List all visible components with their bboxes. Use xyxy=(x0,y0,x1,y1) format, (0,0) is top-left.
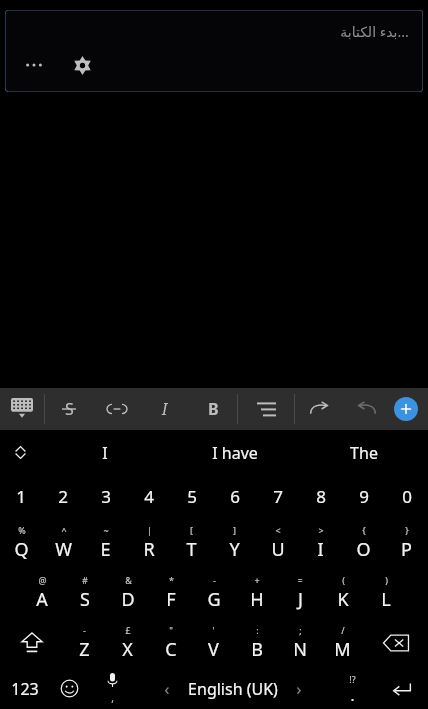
button[interactable]: ( xyxy=(321,568,364,618)
button[interactable]: 9 xyxy=(342,475,385,518)
button[interactable]: Link xyxy=(93,388,141,430)
button[interactable]: @ xyxy=(20,568,63,618)
button[interactable]: 7 xyxy=(256,475,299,518)
staticText: W xyxy=(55,537,72,562)
staticText: I xyxy=(162,398,168,420)
button[interactable]: بدء الكتابة... xyxy=(5,10,423,92)
staticText: English (UK) xyxy=(188,678,278,700)
button[interactable]: More options xyxy=(17,48,51,82)
button[interactable]: > xyxy=(299,518,342,568)
button[interactable]: ‹ xyxy=(135,668,330,709)
button[interactable]: 6 xyxy=(213,475,256,518)
staticText: Z xyxy=(79,637,90,662)
button[interactable]: & xyxy=(106,568,149,618)
button[interactable]: Alignment xyxy=(238,388,294,430)
staticText: I xyxy=(102,442,108,464)
button[interactable]: | xyxy=(127,518,170,568)
staticText: 0 xyxy=(402,485,412,508)
staticText: R xyxy=(143,537,155,562)
button[interactable]: Backspace xyxy=(364,618,428,668)
button[interactable]: 5 xyxy=(170,475,213,518)
button[interactable]: I have xyxy=(170,430,299,475)
staticText: Q xyxy=(14,537,29,562)
staticText: بدء الكتابة... xyxy=(340,22,409,41)
button[interactable]: ) xyxy=(364,568,407,618)
button[interactable]: Keyboard xyxy=(0,388,44,430)
button[interactable]: Add xyxy=(394,397,418,421)
button[interactable]: Bold xyxy=(189,388,237,430)
staticText: " xyxy=(169,624,173,636)
staticText: # xyxy=(82,574,88,586)
staticText: - xyxy=(83,624,86,636)
button[interactable]: Undo xyxy=(343,388,391,430)
button[interactable]: ^ xyxy=(42,518,84,568)
button[interactable]: { xyxy=(342,518,385,568)
button[interactable]: ; xyxy=(278,618,321,668)
button[interactable]: * xyxy=(149,568,192,618)
button[interactable]: 4 xyxy=(127,475,170,518)
button[interactable]: " xyxy=(149,618,192,668)
button[interactable]: Expand suggestions xyxy=(0,430,40,475)
staticText: A xyxy=(36,587,48,612)
staticText: ) xyxy=(385,574,388,586)
button[interactable]: # xyxy=(63,568,106,618)
staticText: ' xyxy=(212,624,215,636)
staticText: % xyxy=(18,524,26,536)
staticText: O xyxy=(356,537,371,562)
button[interactable]: % xyxy=(0,518,42,568)
staticText: 123 xyxy=(11,678,39,700)
button[interactable]: ' xyxy=(192,618,235,668)
staticText: H xyxy=(250,587,264,612)
staticText: | xyxy=(147,524,152,536)
button[interactable]: [ xyxy=(170,518,213,568)
staticText: U xyxy=(271,537,285,562)
staticText: * xyxy=(169,574,174,586)
button[interactable]: Italic xyxy=(141,388,189,430)
button[interactable]: 8 xyxy=(299,475,342,518)
button[interactable]: £ xyxy=(106,618,149,668)
button[interactable]: Enter xyxy=(375,668,428,709)
button[interactable]: 2 xyxy=(42,475,84,518)
staticText: & xyxy=(125,574,132,586)
staticText: C xyxy=(165,637,177,662)
button[interactable]: Voice input xyxy=(90,668,135,709)
button[interactable]: Strikethrough xyxy=(45,388,93,430)
button[interactable]: Shift xyxy=(0,618,63,668)
button[interactable]: 3 xyxy=(84,475,127,518)
button[interactable]: - xyxy=(63,618,106,668)
staticText: ( xyxy=(342,574,345,586)
button[interactable]: : xyxy=(235,618,278,668)
button[interactable]: Settings xyxy=(65,48,99,82)
staticText: - xyxy=(213,574,216,586)
button[interactable]: ] xyxy=(213,518,256,568)
staticText: / xyxy=(341,624,345,636)
staticText: S xyxy=(80,587,90,612)
button[interactable]: I xyxy=(40,430,170,475)
button[interactable]: } xyxy=(385,518,428,568)
button[interactable]: - xyxy=(192,568,235,618)
staticText: ‹ xyxy=(164,677,170,700)
button[interactable]: 123 xyxy=(0,668,49,709)
button[interactable]: < xyxy=(256,518,299,568)
button[interactable]: ~ xyxy=(84,518,127,568)
staticText: 5 xyxy=(187,485,197,508)
staticText: X xyxy=(122,637,133,662)
staticText: = xyxy=(297,574,303,586)
staticText: : xyxy=(256,624,259,636)
staticText: The xyxy=(350,442,378,464)
button[interactable]: 1 xyxy=(0,475,42,518)
button[interactable]: The xyxy=(299,430,428,475)
button[interactable]: + xyxy=(235,568,278,618)
staticText: P xyxy=(401,537,412,562)
button[interactable]: !? xyxy=(330,668,375,709)
staticText: B xyxy=(208,398,219,420)
staticText: £ xyxy=(125,624,131,636)
button[interactable]: / xyxy=(321,618,364,668)
staticText: 7 xyxy=(273,485,283,508)
button[interactable]: = xyxy=(278,568,321,618)
staticText: 8 xyxy=(316,485,326,508)
button[interactable]: Redo xyxy=(295,388,343,430)
button[interactable]: Emoji xyxy=(49,668,90,709)
button[interactable]: 0 xyxy=(385,475,428,518)
staticText: 3 xyxy=(101,485,111,508)
